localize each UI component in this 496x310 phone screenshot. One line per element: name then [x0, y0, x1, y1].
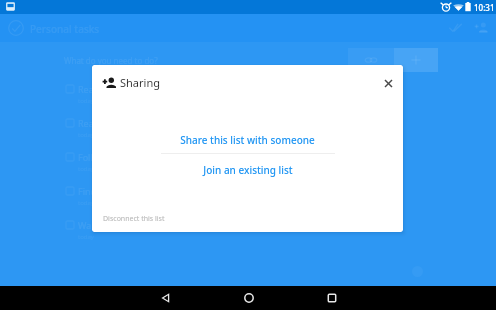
staticText: Personal tasks [30, 22, 100, 36]
button[interactable]: Share this list with someone [92, 127, 403, 153]
button[interactable]: Follow up with people [66, 151, 496, 185]
button[interactable]: Close [376, 71, 400, 95]
staticText: today [78, 165, 94, 173]
staticText: today [78, 233, 94, 241]
button[interactable]: Link [348, 48, 394, 72]
button[interactable]: Back [124, 286, 207, 310]
button[interactable]: Read this article [66, 117, 496, 151]
button[interactable]: Read the documentation [66, 83, 496, 117]
button[interactable]: Recents [290, 286, 373, 310]
button[interactable]: Home [207, 286, 290, 310]
button[interactable]: Add [394, 48, 438, 72]
staticText: Disconnect this list [103, 214, 165, 224]
button[interactable]: Join an existing list [92, 157, 403, 183]
staticText: Read this article [78, 117, 146, 129]
staticText: Sharing [120, 75, 160, 90]
button[interactable]: Walk the dog [66, 219, 496, 253]
staticText: What do you need to do? [64, 55, 158, 66]
staticText: Walk the dog [78, 219, 134, 231]
staticText: Share this list with someone [180, 133, 315, 147]
staticText: today [78, 131, 94, 139]
button[interactable]: Disconnect this list [92, 205, 403, 232]
staticText: today [78, 199, 94, 207]
staticText: Follow up with people [78, 151, 171, 163]
staticText: Read the documentation [78, 83, 183, 95]
staticText: Join an existing list [203, 163, 293, 177]
staticText: 10:31 [474, 2, 495, 13]
staticText: today [78, 97, 94, 105]
staticText: Find a new hobby [78, 185, 153, 197]
button[interactable]: Find a new hobby [66, 185, 496, 219]
